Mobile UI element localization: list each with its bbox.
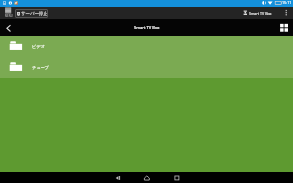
- button[interactable]: Smart TV Box: [243, 7, 272, 19]
- button[interactable]: Back: [0, 20, 18, 36]
- button[interactable]: サーバー停止: [15, 9, 48, 18]
- staticText: Smart TV Box: [134, 25, 160, 30]
- button[interactable]: Menu: [0, 7, 15, 19]
- staticText: 15:11: [282, 0, 292, 5]
- button[interactable]: Back: [106, 172, 130, 183]
- staticText: MENU: [5, 14, 13, 18]
- button[interactable]: Grid view: [277, 20, 293, 36]
- button[interactable]: Recent apps: [165, 172, 189, 183]
- staticText: チューブ: [32, 65, 50, 70]
- staticText: ビデオ: [32, 44, 45, 49]
- button[interactable]: チューブ: [0, 57, 293, 78]
- button[interactable]: More options: [280, 7, 293, 19]
- button[interactable]: Home: [135, 172, 159, 183]
- staticText: Smart TV Box: [249, 11, 272, 16]
- staticText: サーバー停止: [21, 11, 48, 17]
- button[interactable]: ビデオ: [0, 36, 293, 57]
